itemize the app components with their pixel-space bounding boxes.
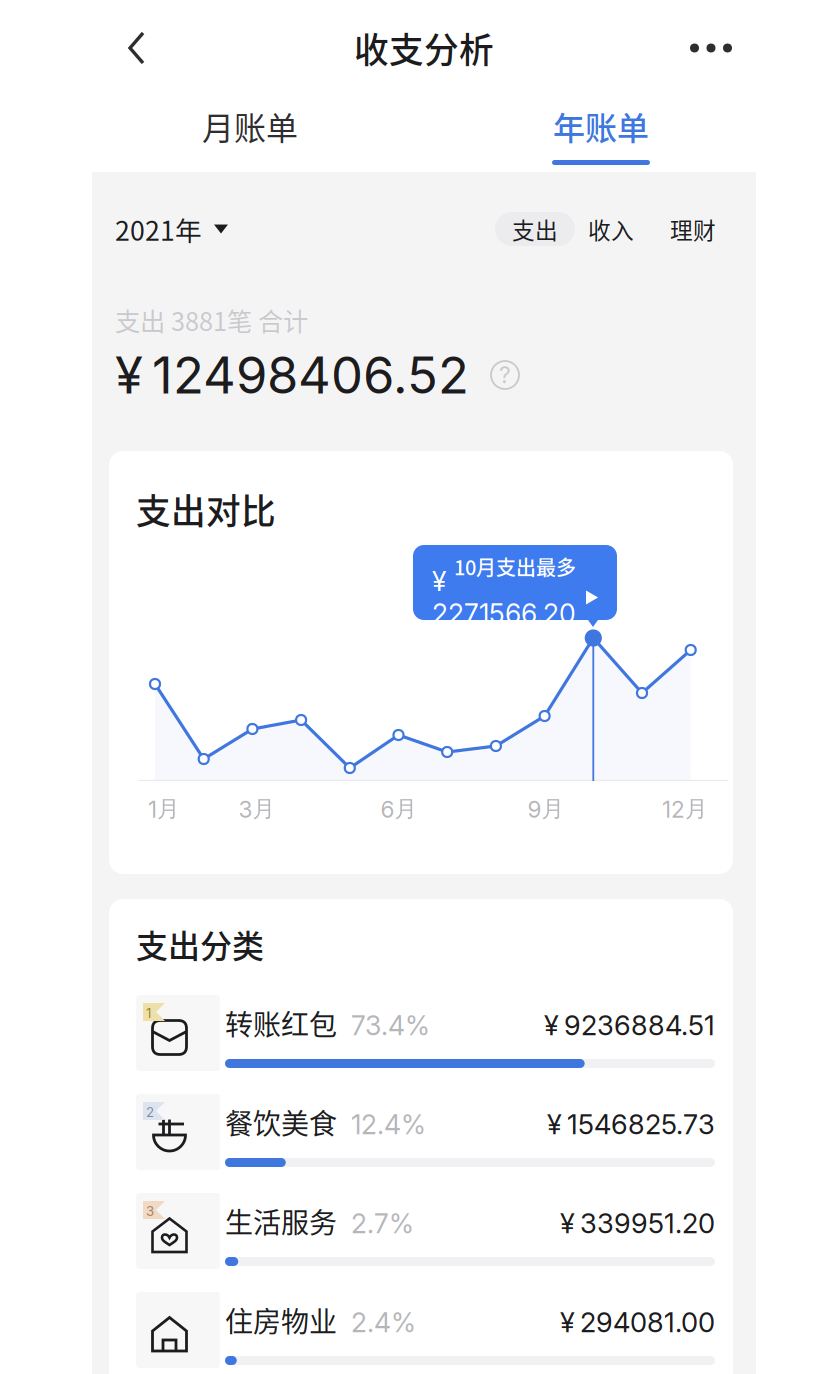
- staticText: 2.4%: [337, 1306, 416, 1339]
- staticText: 理财: [670, 213, 716, 245]
- staticText: 收入: [588, 213, 634, 245]
- staticText: 支出对比: [136, 484, 276, 534]
- button[interactable]: 收入: [583, 212, 639, 246]
- staticText: 月账单: [202, 103, 298, 149]
- staticText: 9月: [527, 795, 564, 823]
- button[interactable]: 支出: [495, 212, 575, 246]
- staticText: 10月支出最多: [454, 552, 576, 581]
- staticText: 1月: [148, 795, 180, 823]
- staticText: ¥ 2271566.20: [432, 565, 576, 630]
- staticText: ¥ 9236884.51: [544, 1009, 715, 1042]
- staticText: 2: [146, 1104, 154, 1120]
- staticText: 支出 3881笔 合计: [115, 302, 308, 338]
- button[interactable]: 2: [136, 1092, 715, 1191]
- staticText: 餐饮美食: [225, 1102, 337, 1142]
- staticText: 12月: [662, 795, 708, 823]
- button[interactable]: 3: [136, 1191, 715, 1290]
- staticText: ¥ 12498406.52: [115, 344, 469, 406]
- staticText: 年账单: [553, 103, 649, 149]
- staticText: 6月: [380, 795, 417, 823]
- staticText: 3: [146, 1203, 154, 1219]
- button[interactable]: 理财: [665, 212, 721, 246]
- staticText: 73.4%: [337, 1009, 430, 1042]
- staticText: 收支分析: [354, 23, 494, 73]
- button[interactable]: Back: [104, 15, 170, 81]
- staticText: ¥ 339951.20: [560, 1207, 715, 1240]
- staticText: 支出: [512, 213, 558, 245]
- staticText: 转账红包: [225, 1003, 337, 1043]
- button[interactable]: 月账单: [202, 96, 362, 156]
- staticText: 12.4%: [337, 1108, 426, 1141]
- staticText: 2021年: [115, 210, 202, 248]
- staticText: ?: [499, 361, 511, 389]
- staticText: ¥ 1546825.73: [547, 1108, 715, 1141]
- button[interactable]: 年账单: [536, 96, 666, 172]
- staticText: 3月: [238, 795, 275, 823]
- button[interactable]: More options: [678, 15, 744, 81]
- staticText: 支出分类: [136, 921, 264, 967]
- button[interactable]: 4: [136, 1290, 715, 1374]
- staticText: 2.7%: [337, 1207, 414, 1240]
- button[interactable]: 1: [136, 993, 715, 1092]
- button[interactable]: 2021年: [115, 198, 228, 260]
- staticText: 住房物业: [225, 1300, 337, 1340]
- staticText: ¥ 294081.00: [560, 1306, 715, 1339]
- staticText: 1: [146, 1005, 151, 1021]
- staticText: 生活服务: [225, 1201, 337, 1241]
